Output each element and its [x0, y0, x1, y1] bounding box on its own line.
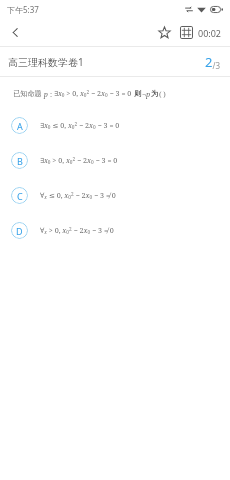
- button[interactable]: C: [0, 178, 230, 213]
- staticText: D: [16, 225, 23, 237]
- button[interactable]: A: [0, 108, 230, 143]
- staticText: 则: [134, 89, 142, 98]
- staticText: ∀x > 0, x02 − 2x0 − 3 ≠ 0: [40, 225, 114, 236]
- staticText: ∃x0 > 0, x02 − 2x0 − 3 = 0: [54, 88, 132, 99]
- staticText: p :: [42, 89, 54, 99]
- staticText: 00:02: [198, 27, 222, 39]
- staticText: ( ): [159, 89, 166, 99]
- button[interactable]: Answer sheet: [175, 19, 197, 46]
- staticText: B: [17, 155, 23, 167]
- button[interactable]: 00:02: [198, 27, 222, 39]
- staticText: ¬p: [142, 89, 151, 99]
- staticText: C: [17, 190, 23, 202]
- staticText: 为: [151, 89, 159, 98]
- staticText: ∃x0 ≤ 0, x02 − 2x0 − 3 = 0: [40, 120, 120, 131]
- staticText: ∃x0 > 0, x02 − 2x0 − 3 = 0: [40, 155, 118, 166]
- staticText: 下午5:37: [7, 4, 39, 15]
- staticText: A: [17, 120, 23, 132]
- staticText: ∀x ≤ 0, x02 − 2x0 − 3 ≠ 0: [40, 190, 116, 201]
- button[interactable]: D: [0, 213, 230, 248]
- staticText: 高三理科数学卷1: [8, 55, 84, 69]
- button[interactable]: B: [0, 143, 230, 178]
- button[interactable]: Favorite: [153, 19, 175, 46]
- staticText: 已知命题: [13, 89, 42, 98]
- button[interactable]: Back: [0, 19, 30, 46]
- staticText: 2/3: [205, 53, 220, 71]
